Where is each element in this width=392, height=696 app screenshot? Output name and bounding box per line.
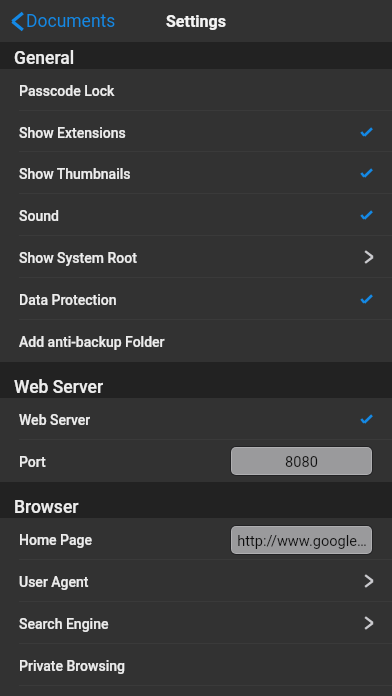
other: Enabled bbox=[354, 404, 378, 434]
staticText: Documents bbox=[26, 11, 116, 32]
button[interactable]: Search Engine bbox=[0, 602, 392, 644]
other: Enabled bbox=[354, 158, 378, 188]
staticText: Port bbox=[19, 454, 46, 470]
button[interactable]: Port bbox=[0, 440, 392, 482]
button[interactable]: Add anti-backup Folder bbox=[0, 320, 392, 362]
staticText: Show Thumbnails bbox=[19, 166, 131, 182]
button[interactable]: Data Protection bbox=[0, 278, 392, 320]
staticText: http://www.google… bbox=[237, 532, 367, 549]
staticText: Web Server bbox=[19, 412, 91, 428]
button[interactable]: Private Browsing bbox=[0, 644, 392, 686]
other: Open bbox=[357, 242, 381, 272]
staticText: 8080 bbox=[285, 453, 318, 470]
staticText: General bbox=[14, 48, 75, 69]
staticText: Private Browsing bbox=[19, 658, 125, 674]
other: Open bbox=[357, 566, 381, 596]
staticText: User Agent bbox=[19, 574, 89, 590]
staticText: Browser bbox=[14, 497, 79, 518]
staticText: Data Protection bbox=[19, 292, 117, 308]
staticText: Passcode Lock bbox=[19, 83, 115, 99]
staticText: Search Engine bbox=[19, 616, 109, 632]
other: Open bbox=[357, 608, 381, 638]
button[interactable]: Passcode Lock bbox=[0, 69, 392, 111]
button[interactable]: Show System Root bbox=[0, 236, 392, 278]
staticText: Home Page bbox=[19, 532, 93, 548]
staticText: Web Server bbox=[14, 377, 104, 398]
button[interactable]: Sound bbox=[0, 194, 392, 236]
staticText: Show System Root bbox=[19, 250, 137, 266]
button[interactable]: Web Server bbox=[0, 398, 392, 440]
button[interactable]: Show Extensions bbox=[0, 111, 392, 152]
other: Enabled bbox=[354, 284, 378, 314]
other: Enabled bbox=[354, 117, 378, 147]
button[interactable]: 8080 bbox=[232, 448, 371, 474]
staticText: Add anti-backup Folder bbox=[19, 334, 165, 350]
button[interactable]: http://www.google… bbox=[232, 527, 371, 553]
button[interactable]: Show Thumbnails bbox=[0, 152, 392, 194]
button[interactable]: User Agent bbox=[0, 560, 392, 602]
button[interactable]: Home Page bbox=[0, 518, 392, 560]
other: Enabled bbox=[354, 200, 378, 230]
staticText: Sound bbox=[19, 208, 59, 224]
staticText: Show Extensions bbox=[19, 125, 126, 141]
staticText: Settings bbox=[166, 12, 226, 31]
button[interactable]: Documents bbox=[0, 0, 126, 42]
